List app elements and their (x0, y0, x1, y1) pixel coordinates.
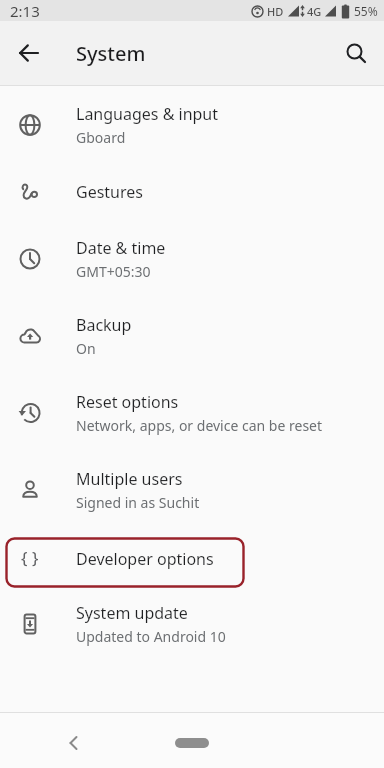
staticText: System update (76, 602, 188, 624)
staticText: Signed in as Suchit (76, 493, 200, 512)
button[interactable] (56, 725, 92, 761)
button[interactable]: Date & time (0, 220, 384, 297)
staticText: HD (267, 4, 284, 19)
staticText: Languages & input (76, 103, 219, 125)
button[interactable]: Gestures (0, 163, 384, 220)
staticText: 2:13 (10, 1, 40, 21)
button[interactable]: System update (0, 585, 384, 662)
button[interactable] (9, 33, 49, 73)
staticText: Multiple users (76, 468, 183, 490)
button[interactable] (175, 738, 209, 748)
staticText: Gestures (76, 181, 143, 203)
button[interactable]: Backup (0, 297, 384, 374)
staticText: Date & time (76, 237, 166, 259)
staticText: On (76, 339, 96, 358)
button[interactable]: Languages & input (0, 86, 384, 163)
button[interactable]: Reset options (0, 374, 384, 451)
button[interactable]: Multiple users (0, 451, 384, 528)
staticText: Network, apps, or device can be reset (76, 416, 323, 435)
staticText: 4G (307, 4, 322, 19)
staticText: Gboard (76, 128, 126, 147)
button[interactable]: { } (0, 528, 384, 585)
staticText: { } (21, 546, 39, 569)
staticText: System (76, 40, 146, 67)
staticText: 55% (354, 3, 378, 19)
staticText: Developer options (76, 548, 214, 570)
staticText: Reset options (76, 391, 179, 413)
staticText: GMT+05:30 (76, 262, 151, 281)
staticText: Updated to Android 10 (76, 627, 226, 646)
button[interactable] (336, 33, 376, 73)
staticText: Backup (76, 314, 132, 336)
